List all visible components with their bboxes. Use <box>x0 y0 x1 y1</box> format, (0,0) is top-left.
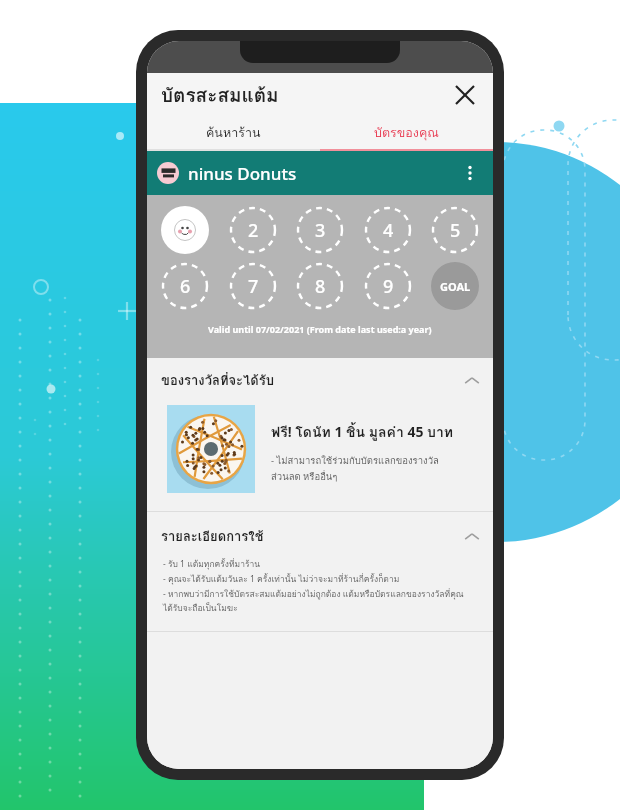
staticText: 2 <box>248 218 259 243</box>
button[interactable]: ค้นหาร้าน <box>147 117 320 149</box>
staticText: 4 <box>383 218 394 243</box>
staticText: 7 <box>248 274 259 299</box>
staticText: Valid until 07/02/2021 (From date last u… <box>208 323 432 335</box>
button[interactable]: More options <box>457 160 483 186</box>
staticText: GOAL <box>440 279 471 294</box>
button[interactable]: ninus Donuts <box>147 151 493 195</box>
button[interactable]: 5 <box>431 206 479 254</box>
button[interactable]: 7 <box>229 262 277 310</box>
staticText: รายละเอียดการใช้ <box>161 526 264 547</box>
button[interactable]: 4 <box>364 206 412 254</box>
staticText: 5 <box>450 218 461 243</box>
staticText: ค้นหาร้าน <box>206 123 261 143</box>
button[interactable]: 3 <box>296 206 344 254</box>
staticText: 6 <box>180 274 191 299</box>
button[interactable] <box>161 206 209 254</box>
button[interactable]: 6 <box>161 262 209 310</box>
staticText: ของรางวัลที่จะได้รับ <box>161 370 274 391</box>
staticText: บัตรสะสมแต้ม <box>161 80 279 110</box>
staticText: - รับ 1 แต้มทุกครั้งที่มาร้าน - คุณจะได้… <box>163 557 464 615</box>
staticText: 3 <box>315 218 326 243</box>
button[interactable]: รายละเอียดการใช้ <box>147 512 493 547</box>
staticText: 8 <box>315 274 326 299</box>
staticText: บัตรของคุณ <box>374 123 439 143</box>
button[interactable]: 2 <box>229 206 277 254</box>
staticText: ninus Donuts <box>188 162 297 185</box>
staticText: ฟรี! โดนัท 1 ชิ้น มูลค่า 45 บาท <box>271 421 454 443</box>
button[interactable]: Close <box>449 79 481 111</box>
button[interactable]: บัตรของคุณ <box>320 117 493 149</box>
staticText: 9 <box>383 274 394 299</box>
button[interactable]: ของรางวัลที่จะได้รับ <box>147 358 493 391</box>
button[interactable]: 9 <box>364 262 412 310</box>
button[interactable]: 8 <box>296 262 344 310</box>
staticText: - ไม่สามารถใช้ร่วมกับบัตรแลกของรางวัล ส่… <box>271 453 439 484</box>
button[interactable]: GOAL <box>431 262 479 310</box>
